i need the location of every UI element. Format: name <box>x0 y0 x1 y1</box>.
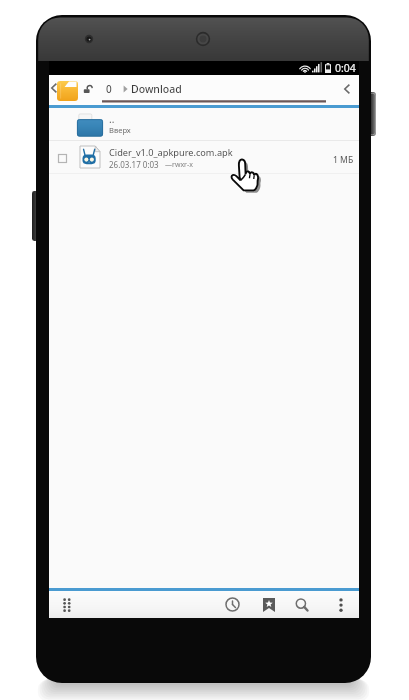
button[interactable]: Back <box>49 81 58 95</box>
button[interactable]: Unlocked <box>82 83 94 95</box>
staticText: Cider_v1.0_apkpure.com.apk <box>109 146 233 159</box>
button[interactable]: .. <box>49 108 359 140</box>
staticText: Download <box>131 82 182 96</box>
button[interactable]: Bookmarks <box>257 592 280 617</box>
staticText: 0:04 <box>335 61 356 75</box>
button[interactable]: Recent <box>220 592 245 617</box>
button[interactable]: Apps <box>57 592 77 617</box>
staticText: 0 <box>106 82 112 96</box>
staticText: 26.03.17 0:03 <box>109 159 159 170</box>
staticText: —rwxr-x <box>165 160 193 170</box>
staticText: .. <box>109 112 115 126</box>
button[interactable]: Download <box>131 82 182 96</box>
button[interactable]: Search <box>290 592 314 617</box>
staticText: Вверх <box>109 125 131 135</box>
staticText: 1 МБ <box>333 154 354 166</box>
button[interactable]: More options <box>331 592 351 617</box>
button[interactable]: Collapse <box>340 81 354 96</box>
button[interactable]: Select file <box>55 151 70 166</box>
button[interactable]: Folder <box>57 80 78 101</box>
button[interactable]: Select file <box>49 141 359 173</box>
